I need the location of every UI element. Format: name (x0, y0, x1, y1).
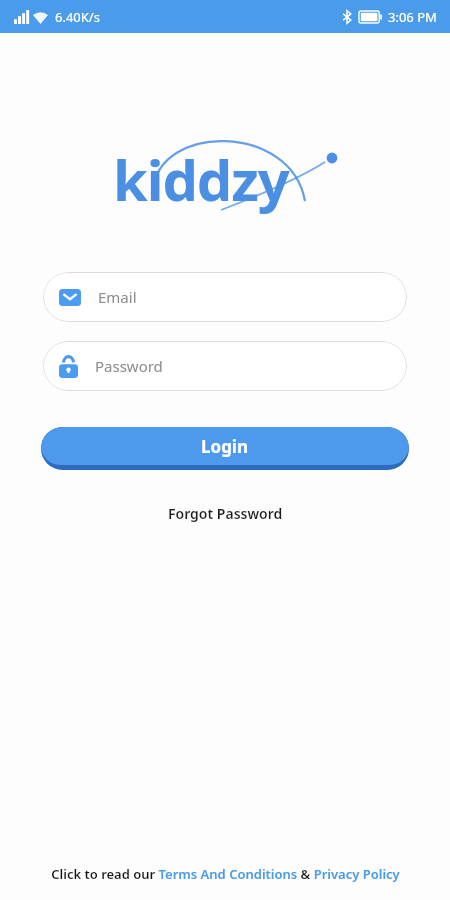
other: Password (59, 355, 78, 378)
button[interactable]: Password (43, 341, 407, 391)
staticText: Login (201, 435, 249, 458)
staticText: Password (95, 356, 163, 376)
staticText: 6.40K/s (55, 8, 100, 26)
button[interactable]: Login (41, 427, 409, 470)
button[interactable]: Forgot Password (0, 504, 450, 523)
staticText: Email (98, 287, 137, 307)
staticText: Click to read our Terms And Conditions &… (51, 865, 400, 883)
staticText: 3:06 PM (388, 8, 437, 26)
staticText: kiddzy (113, 141, 289, 217)
other: Email (59, 289, 81, 306)
button[interactable]: Email (43, 272, 407, 322)
staticText: Forgot Password (168, 504, 283, 523)
button[interactable]: Click to read our Terms And Conditions &… (0, 865, 450, 883)
